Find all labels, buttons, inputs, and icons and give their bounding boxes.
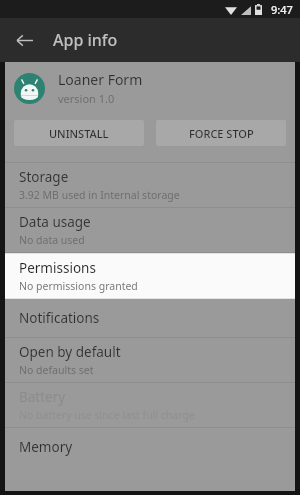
staticText: Memory <box>19 438 73 456</box>
button[interactable]: Permissions <box>5 253 295 299</box>
staticText: App info <box>53 29 118 51</box>
button[interactable]: Storage <box>5 163 295 208</box>
button[interactable]: Notifications <box>5 299 295 338</box>
staticText: Storage <box>19 168 69 186</box>
staticText: FORCE STOP <box>189 126 254 141</box>
staticText: Loaner Form <box>58 70 143 89</box>
button[interactable]: Data usage <box>5 208 295 253</box>
button[interactable]: Back <box>8 24 40 56</box>
staticText: Battery <box>19 388 66 406</box>
staticText: No permissions granted <box>19 279 138 293</box>
staticText: Data usage <box>19 213 91 231</box>
staticText: 3.92 MB used in Internal storage <box>19 188 180 202</box>
staticText: UNINSTALL <box>49 126 109 141</box>
staticText: No battery use since last full charge <box>19 408 195 422</box>
staticText: 9:47 <box>271 2 293 17</box>
button[interactable]: UNINSTALL <box>14 120 144 146</box>
staticText: version 1.0 <box>58 91 115 106</box>
staticText: No defaults set <box>19 363 94 377</box>
staticText: Permissions <box>19 259 96 277</box>
button[interactable]: Memory <box>5 428 295 466</box>
button[interactable]: FORCE STOP <box>156 120 286 146</box>
staticText: Open by default <box>19 343 121 361</box>
staticText: Notifications <box>19 309 100 327</box>
staticText: No data used <box>19 233 85 247</box>
button[interactable]: Open by default <box>5 338 295 383</box>
